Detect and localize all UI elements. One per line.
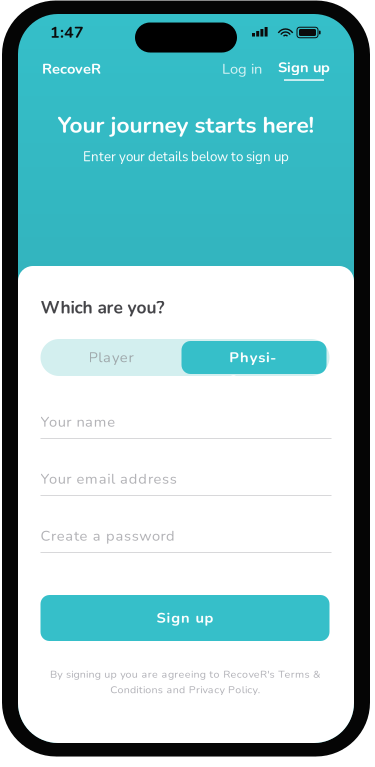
- staticText: Physio: [229, 347, 279, 367]
- staticText: Your journey starts here!: [57, 110, 314, 141]
- button[interactable]: Sign up: [40, 595, 329, 641]
- staticText: Create a password: [40, 526, 175, 546]
- button[interactable]: RecoveR: [42, 53, 101, 85]
- staticText: Sign up: [278, 57, 330, 77]
- staticText: By signing up you are agreeing to Recove…: [50, 667, 320, 681]
- staticText: Player: [88, 347, 133, 367]
- staticText: Your email address: [40, 469, 177, 489]
- staticText: Log in: [222, 59, 262, 79]
- staticText: Conditions and Privacy Policy.: [110, 683, 260, 697]
- staticText: 1:47: [50, 22, 84, 43]
- staticText: Your name: [40, 412, 115, 432]
- button[interactable]: Log in: [222, 53, 262, 85]
- button[interactable]: Player: [40, 339, 181, 376]
- staticText: Which are you?: [40, 296, 164, 320]
- staticText: RecoveR: [42, 59, 101, 79]
- button[interactable]: Physio: [181, 341, 329, 374]
- staticText: Enter your details below to sign up: [83, 148, 289, 166]
- staticText: Sign up: [157, 608, 213, 628]
- button[interactable]: Sign up: [278, 53, 330, 85]
